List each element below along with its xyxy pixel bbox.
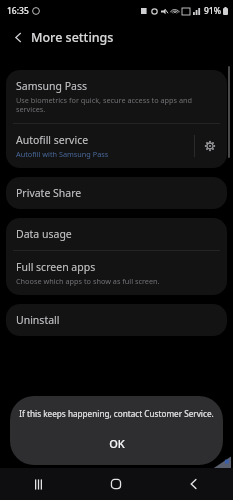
- button[interactable]: Data usage: [6, 218, 227, 250]
- button[interactable]: Autofill service: [6, 124, 227, 168]
- button[interactable]: Uninstall: [6, 304, 227, 336]
- button[interactable]: Private Share: [6, 177, 227, 209]
- staticText: Data usage: [16, 227, 72, 241]
- staticText: Choose which apps to show as full screen…: [16, 276, 160, 286]
- staticText: Samsung Pass: [16, 79, 87, 93]
- button[interactable]: Back: [8, 27, 28, 47]
- button[interactable]: Recent apps: [0, 468, 77, 500]
- staticText: Uninstall: [16, 313, 60, 327]
- staticText: Autofill with Samsung Pass: [16, 149, 109, 159]
- button[interactable]: Samsung Pass: [6, 70, 227, 123]
- button[interactable]: Home: [77, 468, 155, 500]
- staticText: Private Share: [16, 186, 82, 200]
- button[interactable]: Full screen apps: [6, 251, 227, 295]
- staticText: Full screen apps: [16, 260, 96, 274]
- button[interactable]: Autofill settings: [200, 136, 220, 156]
- button[interactable]: Back: [155, 468, 233, 500]
- staticText: Use biometrics for quick, secure access …: [16, 95, 217, 114]
- staticText: 16:35: [7, 5, 29, 17]
- staticText: Autofill service: [16, 133, 89, 147]
- button[interactable]: OK: [10, 431, 223, 455]
- staticText: More settings: [31, 29, 114, 46]
- staticText: 91%: [204, 5, 221, 17]
- staticText: OK: [109, 436, 125, 451]
- staticText: If this keeps happening, contact Custome…: [19, 408, 214, 419]
